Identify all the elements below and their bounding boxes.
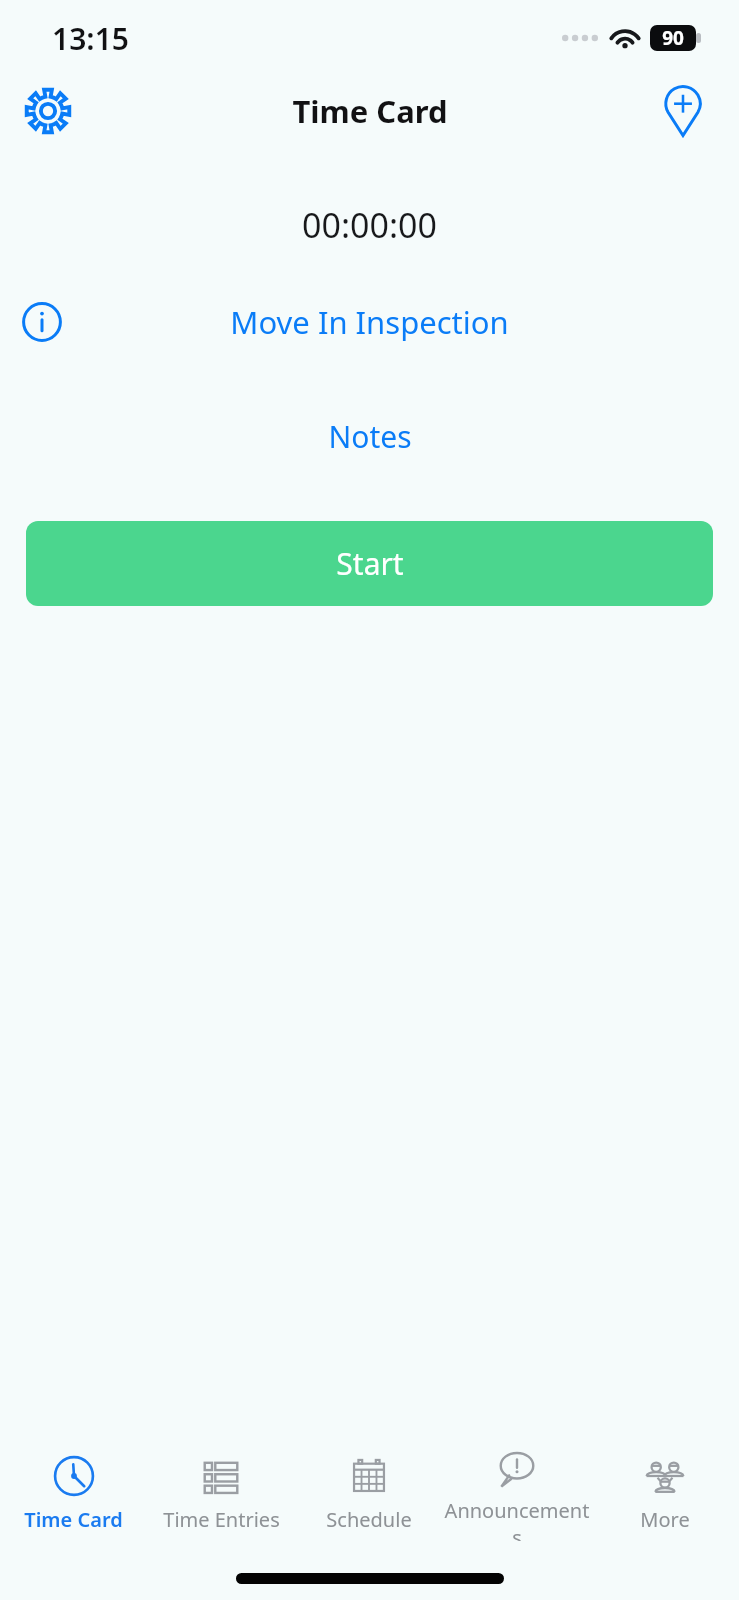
staticText: 00:00:00 (302, 202, 437, 248)
staticText: 13:15 (52, 18, 129, 59)
button[interactable]: Move In Inspection (220, 295, 519, 349)
staticText: More (640, 1506, 690, 1533)
staticText: Time Card (24, 1506, 123, 1533)
staticText: Start (336, 543, 404, 584)
button[interactable]: Announcements (443, 1439, 591, 1547)
button[interactable]: Settings (14, 77, 82, 145)
button[interactable]: More (591, 1448, 739, 1539)
button[interactable]: Information (12, 292, 72, 352)
button[interactable]: Schedule (295, 1448, 443, 1539)
staticText: Announcements (443, 1497, 591, 1541)
staticText: Schedule (326, 1506, 412, 1533)
staticText: Notes (328, 416, 412, 457)
button[interactable]: Start (26, 521, 713, 606)
staticText: Time Entries (163, 1506, 280, 1533)
staticText: Time Card (292, 90, 448, 132)
button[interactable]: Time Entries (147, 1448, 295, 1539)
staticText: Move In Inspection (230, 301, 509, 343)
button[interactable]: Notes (314, 410, 426, 463)
button[interactable]: Time Card (0, 1448, 147, 1539)
button[interactable]: Add location (649, 77, 717, 145)
staticText: 90 (662, 25, 684, 51)
